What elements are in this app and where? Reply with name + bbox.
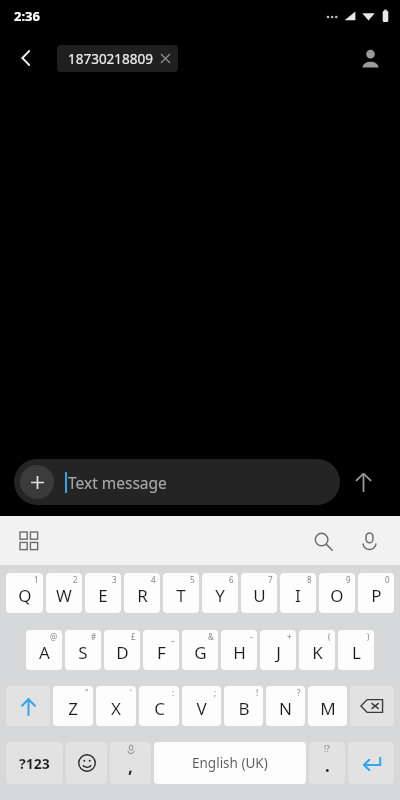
button[interactable]: 8 xyxy=(280,573,316,613)
button[interactable]: 7 xyxy=(241,573,277,613)
staticText: 5 xyxy=(190,574,195,585)
button[interactable]: 6 xyxy=(202,573,238,613)
staticText: 18730218809 xyxy=(68,50,153,68)
button[interactable]: ? xyxy=(266,686,305,726)
button[interactable]: : xyxy=(139,686,179,726)
staticText: E xyxy=(98,584,108,607)
staticText: R xyxy=(137,584,148,607)
button[interactable]: @ xyxy=(26,630,62,670)
staticText: 2 xyxy=(73,574,78,585)
staticText: English (UK) xyxy=(192,754,268,772)
button[interactable]: Shift xyxy=(6,686,50,726)
staticText: M xyxy=(320,697,336,720)
button[interactable]: 5 xyxy=(163,573,199,613)
button[interactable]: Comma xyxy=(110,742,151,784)
staticText: £ xyxy=(131,631,136,642)
button[interactable]: Attach xyxy=(14,459,340,505)
button[interactable]: 1 xyxy=(6,573,43,613)
staticText: A xyxy=(39,641,50,664)
button[interactable]: Emoji xyxy=(66,742,107,784)
staticText: ?123 xyxy=(19,754,50,773)
staticText: S xyxy=(78,641,88,664)
staticText: ' xyxy=(130,687,132,698)
staticText: # xyxy=(91,631,97,642)
staticText: @ xyxy=(50,631,58,642)
staticText: W xyxy=(56,584,72,607)
button[interactable]: & xyxy=(182,630,218,670)
button[interactable]: _ xyxy=(143,630,179,670)
staticText: & xyxy=(208,631,214,642)
staticText: Y xyxy=(215,584,225,607)
button[interactable]: ! xyxy=(224,686,263,726)
staticText: I xyxy=(295,584,301,607)
staticText: K xyxy=(312,641,323,664)
button[interactable]: 3 xyxy=(85,573,121,613)
staticText: 1 xyxy=(34,574,39,585)
staticText: 9 xyxy=(346,574,351,585)
button[interactable]: 18730218809 xyxy=(57,45,178,72)
staticText: . xyxy=(325,754,330,777)
staticText: Text message xyxy=(68,472,167,493)
staticText: 3 xyxy=(112,574,117,585)
button[interactable]: Search xyxy=(304,522,342,560)
button[interactable]: + xyxy=(260,630,296,670)
button[interactable]: English (UK) xyxy=(154,742,306,784)
staticText: H xyxy=(233,641,246,664)
staticText: X xyxy=(111,697,121,720)
button[interactable]: Symbols xyxy=(6,742,63,784)
button[interactable]: £ xyxy=(104,630,140,670)
staticText: ) xyxy=(367,631,370,642)
staticText: " xyxy=(85,687,89,698)
staticText: 0 xyxy=(385,574,390,585)
staticText: G xyxy=(194,641,207,664)
button[interactable]: - xyxy=(221,630,257,670)
button[interactable]: Period xyxy=(309,742,345,784)
button[interactable]: M xyxy=(308,686,347,726)
button[interactable]: 9 xyxy=(319,573,355,613)
staticText: 7 xyxy=(268,574,273,585)
staticText: T xyxy=(176,584,186,607)
button[interactable]: Enter xyxy=(348,742,394,784)
staticText: !? xyxy=(324,743,330,754)
button[interactable]: # xyxy=(65,630,101,670)
staticText: 4 xyxy=(151,574,156,585)
button[interactable]: Contact details xyxy=(350,38,390,78)
staticText: F xyxy=(157,641,166,664)
staticText: 8 xyxy=(307,574,312,585)
button[interactable]: 4 xyxy=(124,573,160,613)
staticText: L xyxy=(352,641,361,664)
button[interactable]: ' xyxy=(96,686,136,726)
button[interactable]: ; xyxy=(182,686,221,726)
button[interactable]: ( xyxy=(299,630,335,670)
staticText: ? xyxy=(297,687,301,698)
button[interactable]: Back xyxy=(8,40,44,76)
staticText: O xyxy=(330,584,344,607)
button[interactable]: Backspace xyxy=(350,686,394,726)
staticText: + xyxy=(287,631,292,642)
staticText: D xyxy=(116,641,129,664)
staticText: ( xyxy=(328,631,331,642)
staticText: 6 xyxy=(229,574,234,585)
staticText: N xyxy=(279,697,292,720)
button[interactable]: 2 xyxy=(46,573,82,613)
staticText: ; xyxy=(214,687,217,698)
staticText: , xyxy=(128,755,133,778)
button[interactable]: ) xyxy=(338,630,374,670)
staticText: Z xyxy=(68,697,78,720)
button[interactable]: Attach xyxy=(20,465,54,499)
staticText: : xyxy=(172,687,175,698)
button[interactable]: " xyxy=(53,686,93,726)
staticText: C xyxy=(154,697,165,720)
button[interactable]: Toolbar xyxy=(12,524,46,558)
staticText: - xyxy=(250,631,253,642)
button[interactable]: Send xyxy=(340,459,386,505)
staticText: 2:36 xyxy=(14,7,40,25)
staticText: J xyxy=(276,641,281,664)
staticText: P xyxy=(371,584,382,607)
staticText: Q xyxy=(18,584,32,607)
staticText: V xyxy=(196,697,207,720)
button[interactable]: 0 xyxy=(358,573,394,613)
staticText: ! xyxy=(256,687,259,698)
button[interactable]: Voice input xyxy=(350,522,388,560)
staticText: U xyxy=(253,584,266,607)
